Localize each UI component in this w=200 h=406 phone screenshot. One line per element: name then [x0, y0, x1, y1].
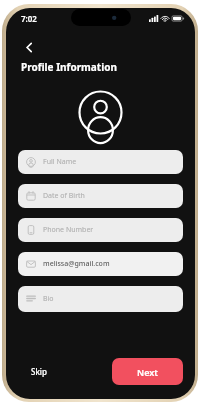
staticText: Profile Information	[21, 60, 117, 74]
button[interactable]: Phone Number	[18, 218, 183, 242]
staticText: Bio	[43, 294, 54, 304]
staticText: Next	[137, 366, 158, 378]
staticText: Date of Birth	[43, 191, 85, 201]
staticText: Skip	[31, 366, 47, 377]
button[interactable]: Profile photo	[78, 90, 123, 135]
staticText: melissa@gmail.com	[43, 259, 110, 269]
button[interactable]: melissa@gmail.com	[18, 252, 183, 276]
button[interactable]: Full Name	[18, 150, 183, 174]
button[interactable]: Back	[18, 36, 40, 58]
button[interactable]: Date of Birth	[18, 184, 183, 208]
staticText: Full Name	[43, 157, 77, 167]
staticText: 7:02	[21, 13, 37, 24]
button[interactable]: Skip	[21, 359, 57, 384]
button[interactable]: Bio	[18, 286, 183, 312]
button[interactable]: Next	[112, 358, 183, 385]
staticText: Phone Number	[43, 225, 94, 235]
